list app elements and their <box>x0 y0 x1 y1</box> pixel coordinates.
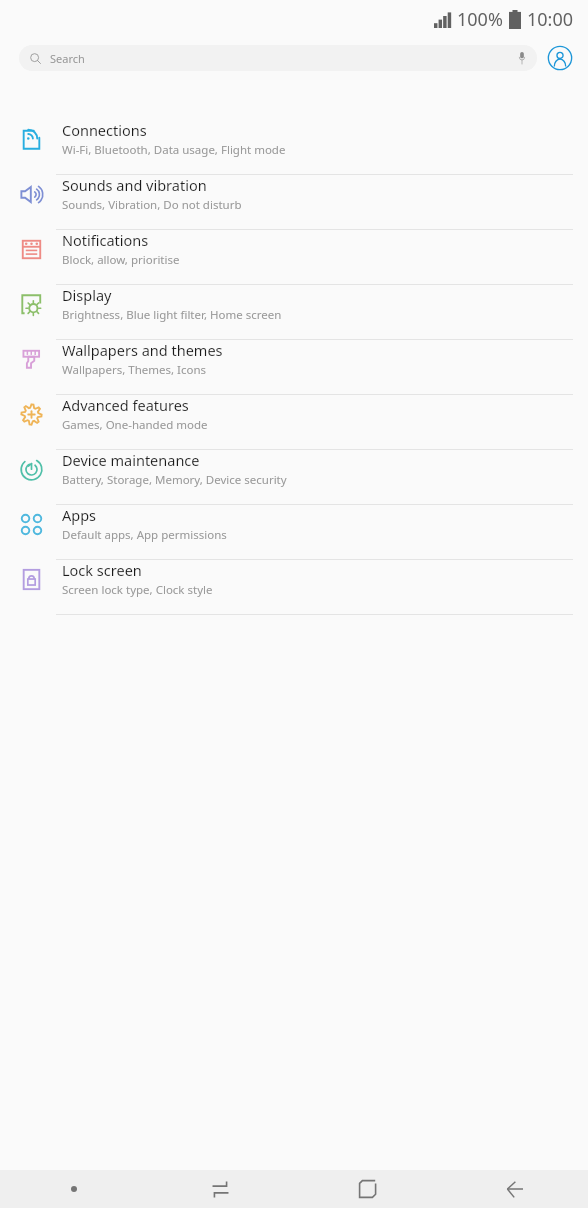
staticText: Wallpapers, Themes, Icons <box>62 362 207 378</box>
staticText: 10:00 <box>527 7 574 32</box>
button[interactable]: Advanced features <box>0 395 588 450</box>
staticText: Lock screen <box>62 560 142 580</box>
button[interactable]: Recents <box>147 1170 294 1208</box>
staticText: Search <box>50 51 85 66</box>
button[interactable]: Apps <box>0 505 588 560</box>
button[interactable]: Search <box>19 45 537 71</box>
button[interactable]: Account <box>547 45 573 71</box>
staticText: Sounds, Vibration, Do not disturb <box>62 197 242 213</box>
staticText: Advanced features <box>62 395 189 415</box>
staticText: Connections <box>62 120 147 140</box>
staticText: Games, One-handed mode <box>62 417 208 433</box>
button[interactable]: Sounds and vibration <box>0 175 588 230</box>
staticText: Battery, Storage, Memory, Device securit… <box>62 472 287 488</box>
button[interactable]: Notifications <box>0 230 588 285</box>
staticText: Sounds and vibration <box>62 175 207 195</box>
button[interactable]: Device maintenance <box>0 450 588 505</box>
staticText: Default apps, App permissions <box>62 527 227 543</box>
staticText: Wallpapers and themes <box>62 340 223 360</box>
staticText: Display <box>62 285 112 305</box>
button[interactable]: Wallpapers and themes <box>0 340 588 395</box>
staticText: Brightness, Blue light filter, Home scre… <box>62 307 282 323</box>
staticText: Notifications <box>62 230 149 250</box>
staticText: Wi-Fi, Bluetooth, Data usage, Flight mod… <box>62 142 286 158</box>
staticText: Screen lock type, Clock style <box>62 582 213 598</box>
staticText: Device maintenance <box>62 450 200 470</box>
staticText: Apps <box>62 505 97 525</box>
button[interactable]: Connections <box>0 120 588 175</box>
button[interactable]: Display <box>0 285 588 340</box>
button[interactable]: Lock screen <box>0 560 588 615</box>
staticText: Block, allow, prioritise <box>62 252 180 268</box>
button[interactable]: Menu indicator <box>0 1170 147 1208</box>
staticText: 100% <box>457 7 503 32</box>
button[interactable]: Home <box>294 1170 441 1208</box>
button[interactable]: Back <box>441 1170 588 1208</box>
